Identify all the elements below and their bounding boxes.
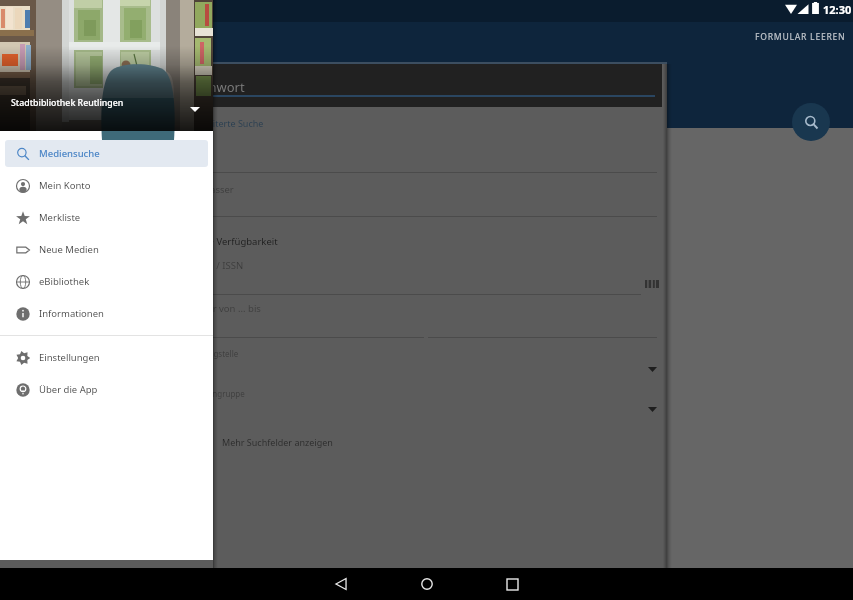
button[interactable]: eBibliothek bbox=[5, 268, 208, 295]
button[interactable]: Zweigstelle auswählen bbox=[648, 367, 657, 372]
button[interactable]: Merkliste bbox=[5, 204, 208, 231]
staticText: Erscheinungsjahr von ... bis bbox=[139, 302, 261, 315]
staticText: Neue Medien bbox=[39, 243, 99, 256]
button[interactable]: Neue Medien bbox=[5, 236, 208, 263]
button[interactable]: Barcode scannen bbox=[645, 280, 659, 288]
staticText: Einstellungen bbox=[39, 351, 100, 364]
staticText: Titel bbox=[192, 152, 211, 165]
staticText: Über die App bbox=[39, 383, 98, 396]
staticText: Zweigstelle bbox=[196, 348, 239, 359]
staticText: eBibliothek bbox=[39, 275, 90, 288]
button[interactable]: Mediengruppe auswählen bbox=[648, 407, 657, 412]
staticText: ISBN / ISSN bbox=[192, 259, 244, 272]
button[interactable]: Erweiterte Suche bbox=[192, 117, 264, 129]
button[interactable]: FORMULAR LEEREN bbox=[755, 31, 846, 43]
staticText: Verfasser bbox=[192, 183, 234, 196]
staticText: Informationen bbox=[39, 307, 104, 320]
button[interactable]: Einstellungen bbox=[5, 344, 208, 371]
staticText: Stadtbibliothek Reutlingen bbox=[11, 97, 124, 109]
button[interactable]: Bibliothek wechseln bbox=[186, 100, 204, 118]
button[interactable]: Suchen bbox=[792, 103, 830, 141]
staticText: Suchbegriff / Stichwort bbox=[105, 78, 245, 96]
staticText: FORMULAR LEEREN bbox=[755, 31, 846, 43]
button[interactable]: Startbildschirm bbox=[399, 568, 455, 600]
button[interactable]: Mein Konto bbox=[5, 172, 208, 199]
button[interactable]: Informationen bbox=[5, 300, 208, 327]
staticText: Merkliste bbox=[39, 211, 81, 224]
staticText: Mehr Suchfelder anzeigen bbox=[222, 436, 333, 448]
staticText: 12:30 bbox=[823, 2, 852, 17]
button[interactable]: Nur sofort verfügbare · Verfügbarkeit bbox=[111, 235, 278, 248]
button[interactable]: Mehr Suchfelder anzeigen bbox=[205, 436, 333, 448]
button[interactable]: Übersicht bbox=[484, 568, 540, 600]
staticText: Mediensuche bbox=[39, 147, 100, 160]
button[interactable]: Zurück bbox=[313, 568, 369, 600]
staticText: Mein Konto bbox=[39, 179, 91, 192]
button[interactable]: Suchbegriff / Stichwort bbox=[0, 64, 662, 107]
button[interactable]: Über die App bbox=[5, 376, 208, 403]
staticText: Mediengruppe bbox=[189, 388, 245, 399]
button[interactable]: Mediensuche bbox=[5, 140, 208, 167]
button[interactable]: Stadtbibliothek Reutlingen bbox=[0, 0, 213, 131]
